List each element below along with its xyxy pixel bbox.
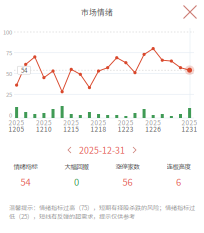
staticText: 75 xyxy=(6,48,12,57)
staticText: 50 xyxy=(6,69,12,78)
staticText: 0 xyxy=(74,175,79,188)
staticText: 1223 xyxy=(118,124,134,134)
staticText: 1205 xyxy=(9,124,25,134)
staticText: 情绪指标 xyxy=(13,162,37,171)
staticText: 54 xyxy=(20,175,30,188)
staticText: 1210 xyxy=(36,124,52,134)
staticText: 54 xyxy=(21,66,27,75)
staticText: 56 xyxy=(122,175,132,188)
staticText: 温馨提示：情绪指标过高（75），短期有择股杀跌的风险；情绪指标过低（25），短线… xyxy=(9,203,195,221)
staticText: 涨停家数 xyxy=(115,162,139,171)
staticText: 连板高度 xyxy=(166,162,190,171)
button[interactable]: Next day xyxy=(131,145,138,155)
staticText: 1218 xyxy=(90,124,106,134)
staticText: 2025 xyxy=(145,118,161,127)
staticText: 大幅回撤 xyxy=(64,162,88,171)
staticText: 25 xyxy=(6,90,12,98)
staticText: 1231 xyxy=(182,124,198,134)
staticText: 1215 xyxy=(63,124,79,134)
staticText: 0 xyxy=(9,111,12,119)
staticText: 2025 xyxy=(9,118,25,127)
staticText: 1226 xyxy=(145,124,161,134)
staticText: 2025 xyxy=(118,118,134,127)
staticText: 2025 xyxy=(63,118,79,127)
staticText: 6 xyxy=(176,175,181,188)
button[interactable]: Close xyxy=(178,0,201,23)
staticText: 2025 xyxy=(36,118,52,127)
staticText: 2025-12-31 xyxy=(79,144,125,156)
staticText: 2025 xyxy=(90,118,106,127)
staticText: 2025 xyxy=(182,118,198,127)
button[interactable]: Previous day xyxy=(66,145,73,155)
staticText: 市场情绪 xyxy=(81,6,113,18)
staticText: 100 xyxy=(3,28,12,36)
